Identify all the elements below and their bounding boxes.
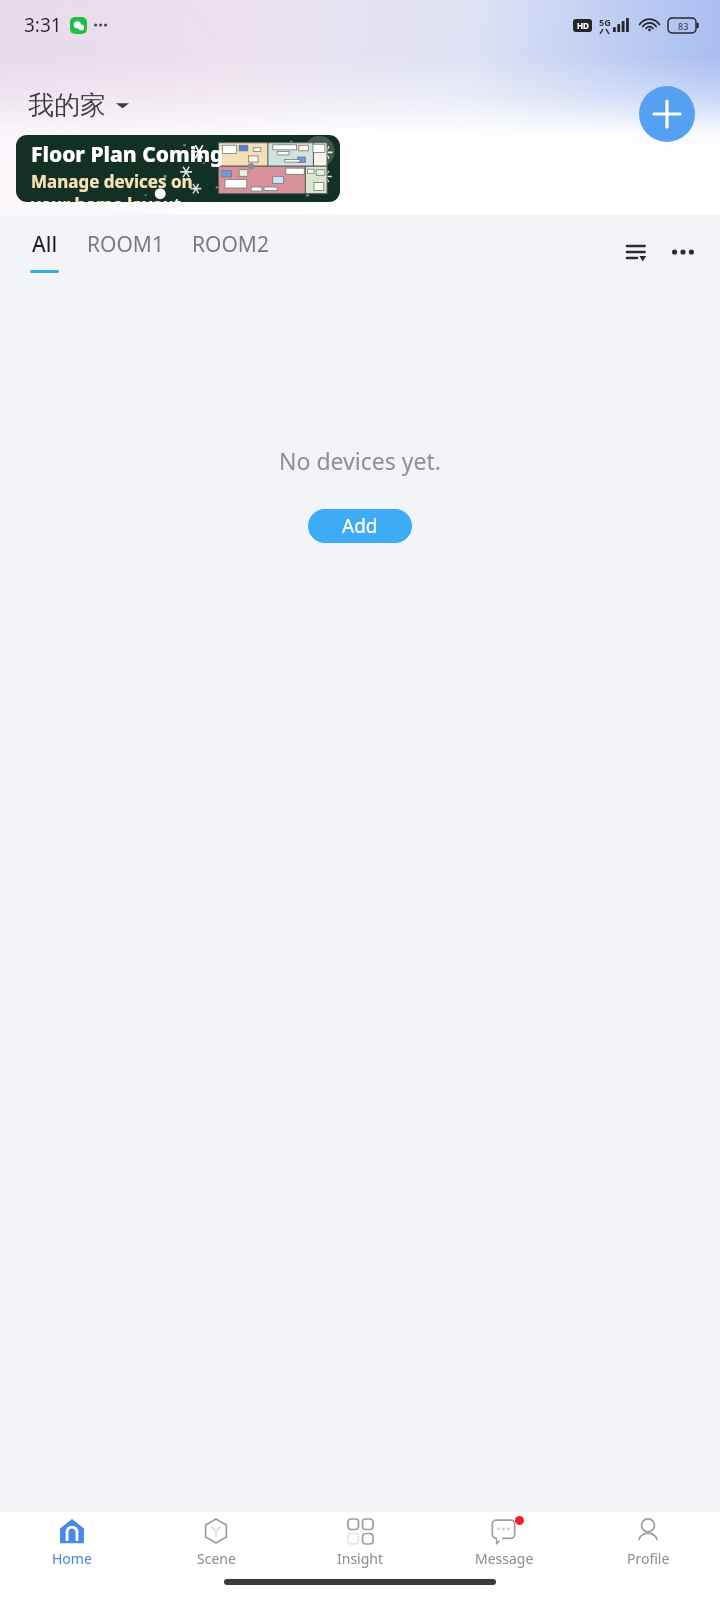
staticText: Floor Plan Coming (31, 140, 224, 169)
staticText: 我的家 (28, 89, 106, 122)
staticText: Add (342, 513, 378, 539)
staticText: ROOM1 (87, 230, 164, 259)
button[interactable]: Insight (288, 1512, 432, 1574)
button[interactable]: Scene (144, 1512, 288, 1574)
button[interactable]: 我的家 (28, 89, 129, 122)
button[interactable]: ROOM1 (73, 230, 178, 273)
staticText: 5G (599, 16, 611, 28)
staticText: Home (52, 1549, 92, 1568)
staticText: your home layout (31, 193, 182, 202)
button[interactable]: Profile (576, 1512, 720, 1574)
staticText: ROOM2 (192, 230, 269, 259)
staticText: 3:31 (24, 12, 62, 38)
staticText: Insight (337, 1549, 384, 1568)
staticText: HD (577, 20, 589, 31)
staticText: Manage devices on (31, 170, 193, 193)
staticText: All (32, 230, 58, 259)
button[interactable]: Add device (639, 86, 695, 142)
button[interactable]: Floor Plan Coming (16, 135, 340, 202)
button[interactable]: Sort (622, 237, 652, 267)
button[interactable]: All (16, 230, 73, 273)
staticText: Scene (197, 1549, 236, 1568)
button[interactable]: Home (0, 1512, 144, 1574)
staticText: Profile (627, 1549, 670, 1568)
staticText: No devices yet. (0, 445, 720, 476)
staticText: 83 (678, 20, 689, 32)
button[interactable]: Message (432, 1512, 576, 1574)
staticText: Message (475, 1549, 534, 1568)
button[interactable]: More options (668, 237, 698, 267)
button[interactable]: ROOM2 (178, 230, 283, 273)
button[interactable]: Add (308, 509, 412, 543)
